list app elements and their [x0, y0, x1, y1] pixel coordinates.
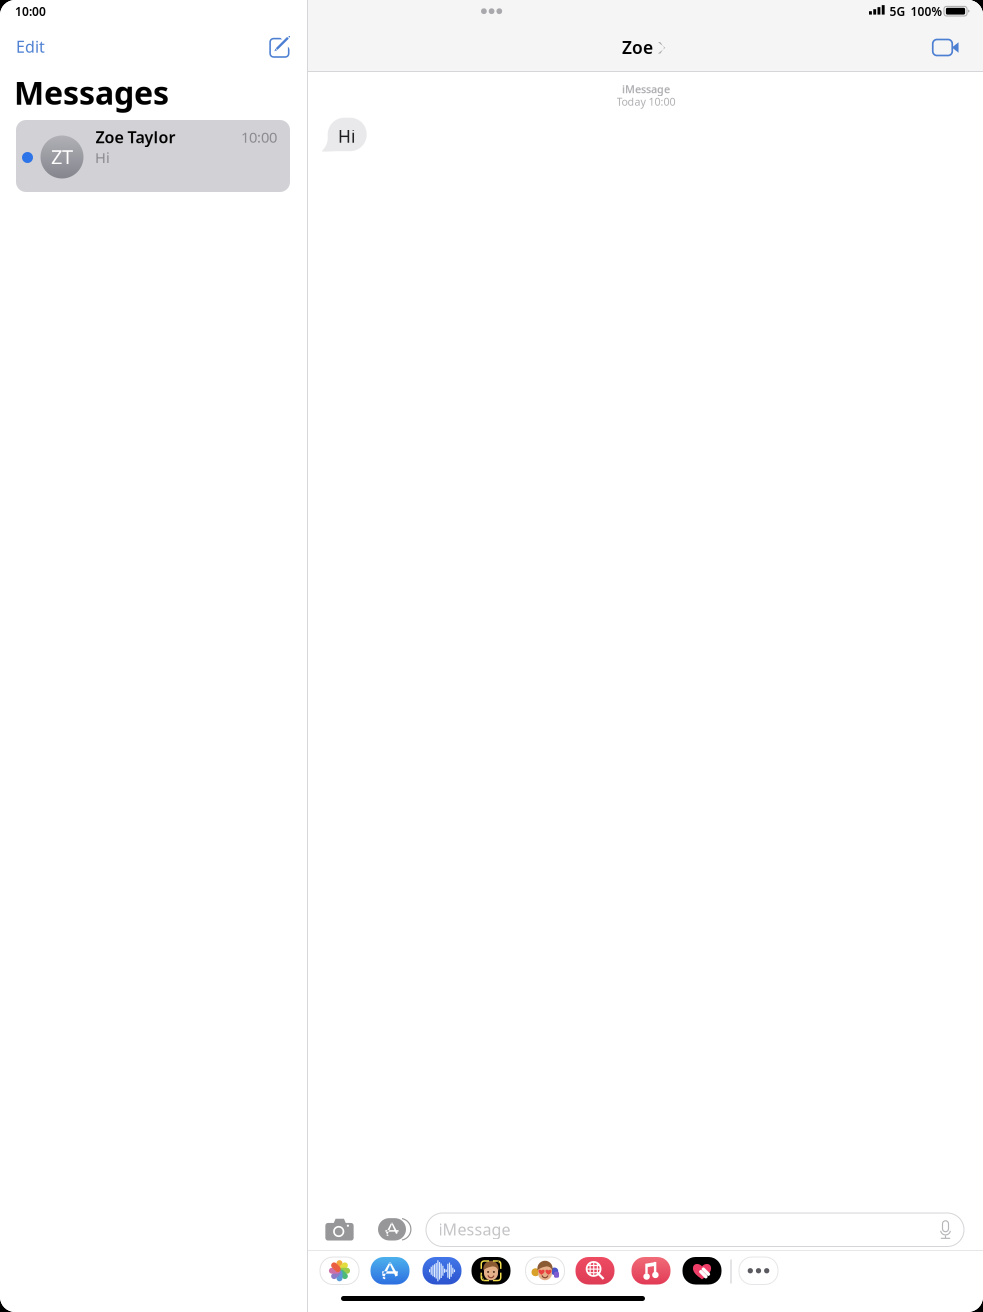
button[interactable]: FaceTime: [921, 28, 963, 66]
button[interactable]: Music: [631, 1257, 670, 1284]
button[interactable]: More: [739, 1257, 778, 1284]
staticText: Zoe Taylor: [95, 126, 175, 148]
staticText: Hi: [95, 148, 110, 167]
staticText: Messages: [14, 71, 169, 113]
staticText: 5G: [889, 3, 905, 19]
button[interactable]: Photos: [320, 1257, 359, 1284]
staticText: 10:00: [241, 127, 277, 147]
staticText: iMessage: [438, 1219, 510, 1240]
button[interactable]: Apps: [370, 1207, 414, 1251]
button[interactable]: Memoji: [471, 1257, 510, 1284]
button[interactable]: Dictate: [932, 1213, 958, 1246]
button[interactable]: Health: [682, 1257, 721, 1284]
staticText: Hi: [338, 124, 355, 147]
button[interactable]: Zoe: [622, 36, 665, 66]
button[interactable]: Audio Message: [422, 1257, 461, 1284]
staticText: Zoe: [622, 36, 653, 59]
button[interactable]: App Store: [370, 1257, 409, 1284]
button[interactable]: Images: [575, 1257, 614, 1284]
button[interactable]: Edit: [0, 31, 60, 61]
button[interactable]: iMessage: [426, 1213, 964, 1246]
button[interactable]: New Message: [257, 28, 301, 66]
staticText: 10:00: [15, 3, 46, 19]
staticText: Today 10:00: [616, 94, 675, 109]
staticText: ZT: [51, 143, 73, 170]
staticText: iMessage: [622, 82, 670, 96]
button[interactable]: ZT: [16, 120, 290, 192]
staticText: 100%: [910, 3, 942, 19]
staticText: Edit: [16, 36, 45, 57]
button[interactable]: Camera: [317, 1207, 361, 1251]
button[interactable]: Memoji Stickers: [525, 1257, 564, 1284]
